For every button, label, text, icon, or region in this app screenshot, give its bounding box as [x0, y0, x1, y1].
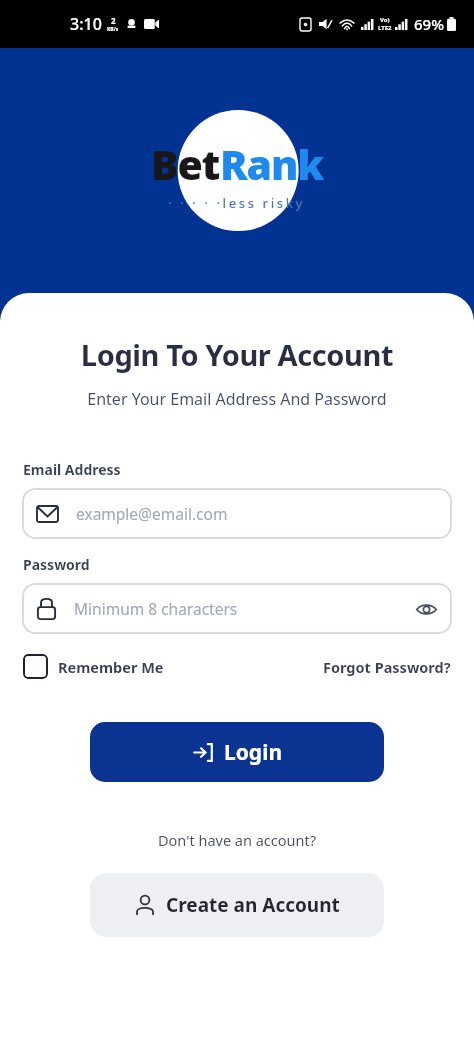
button[interactable]: example@email.com: [22, 488, 452, 539]
staticText: Login: [224, 738, 283, 767]
staticText: Don't have an account?: [0, 830, 474, 850]
staticText: LTE2: [378, 24, 392, 32]
staticText: Enter Your Email Address And Password: [0, 388, 474, 410]
button[interactable]: Login: [90, 722, 384, 782]
button[interactable]: Remember Me: [23, 654, 164, 679]
button[interactable]: Create an Account: [90, 873, 384, 937]
staticText: Login To Your Account: [0, 335, 474, 374]
staticText: KB/s: [107, 26, 119, 33]
staticText: 2: [111, 15, 116, 26]
staticText: Remember Me: [58, 657, 164, 677]
staticText: Forgot Password?: [323, 657, 451, 677]
staticText: example@email.com: [76, 503, 228, 524]
staticText: · · · · ·less risky: [168, 194, 306, 212]
button[interactable]: Show password: [414, 597, 438, 621]
staticText: Email Address: [23, 460, 121, 479]
staticText: Rank: [220, 136, 323, 192]
staticText: 3:10: [70, 13, 102, 35]
staticText: Minimum 8 characters: [74, 598, 238, 619]
button[interactable]: Minimum 8 characters: [22, 583, 452, 634]
staticText: Password: [23, 555, 90, 574]
staticText: Create an Account: [166, 892, 340, 918]
staticText: Vo): [380, 16, 390, 24]
staticText: 69%: [414, 14, 444, 34]
staticText: Bet: [151, 136, 220, 192]
button[interactable]: Forgot Password?: [323, 657, 451, 677]
